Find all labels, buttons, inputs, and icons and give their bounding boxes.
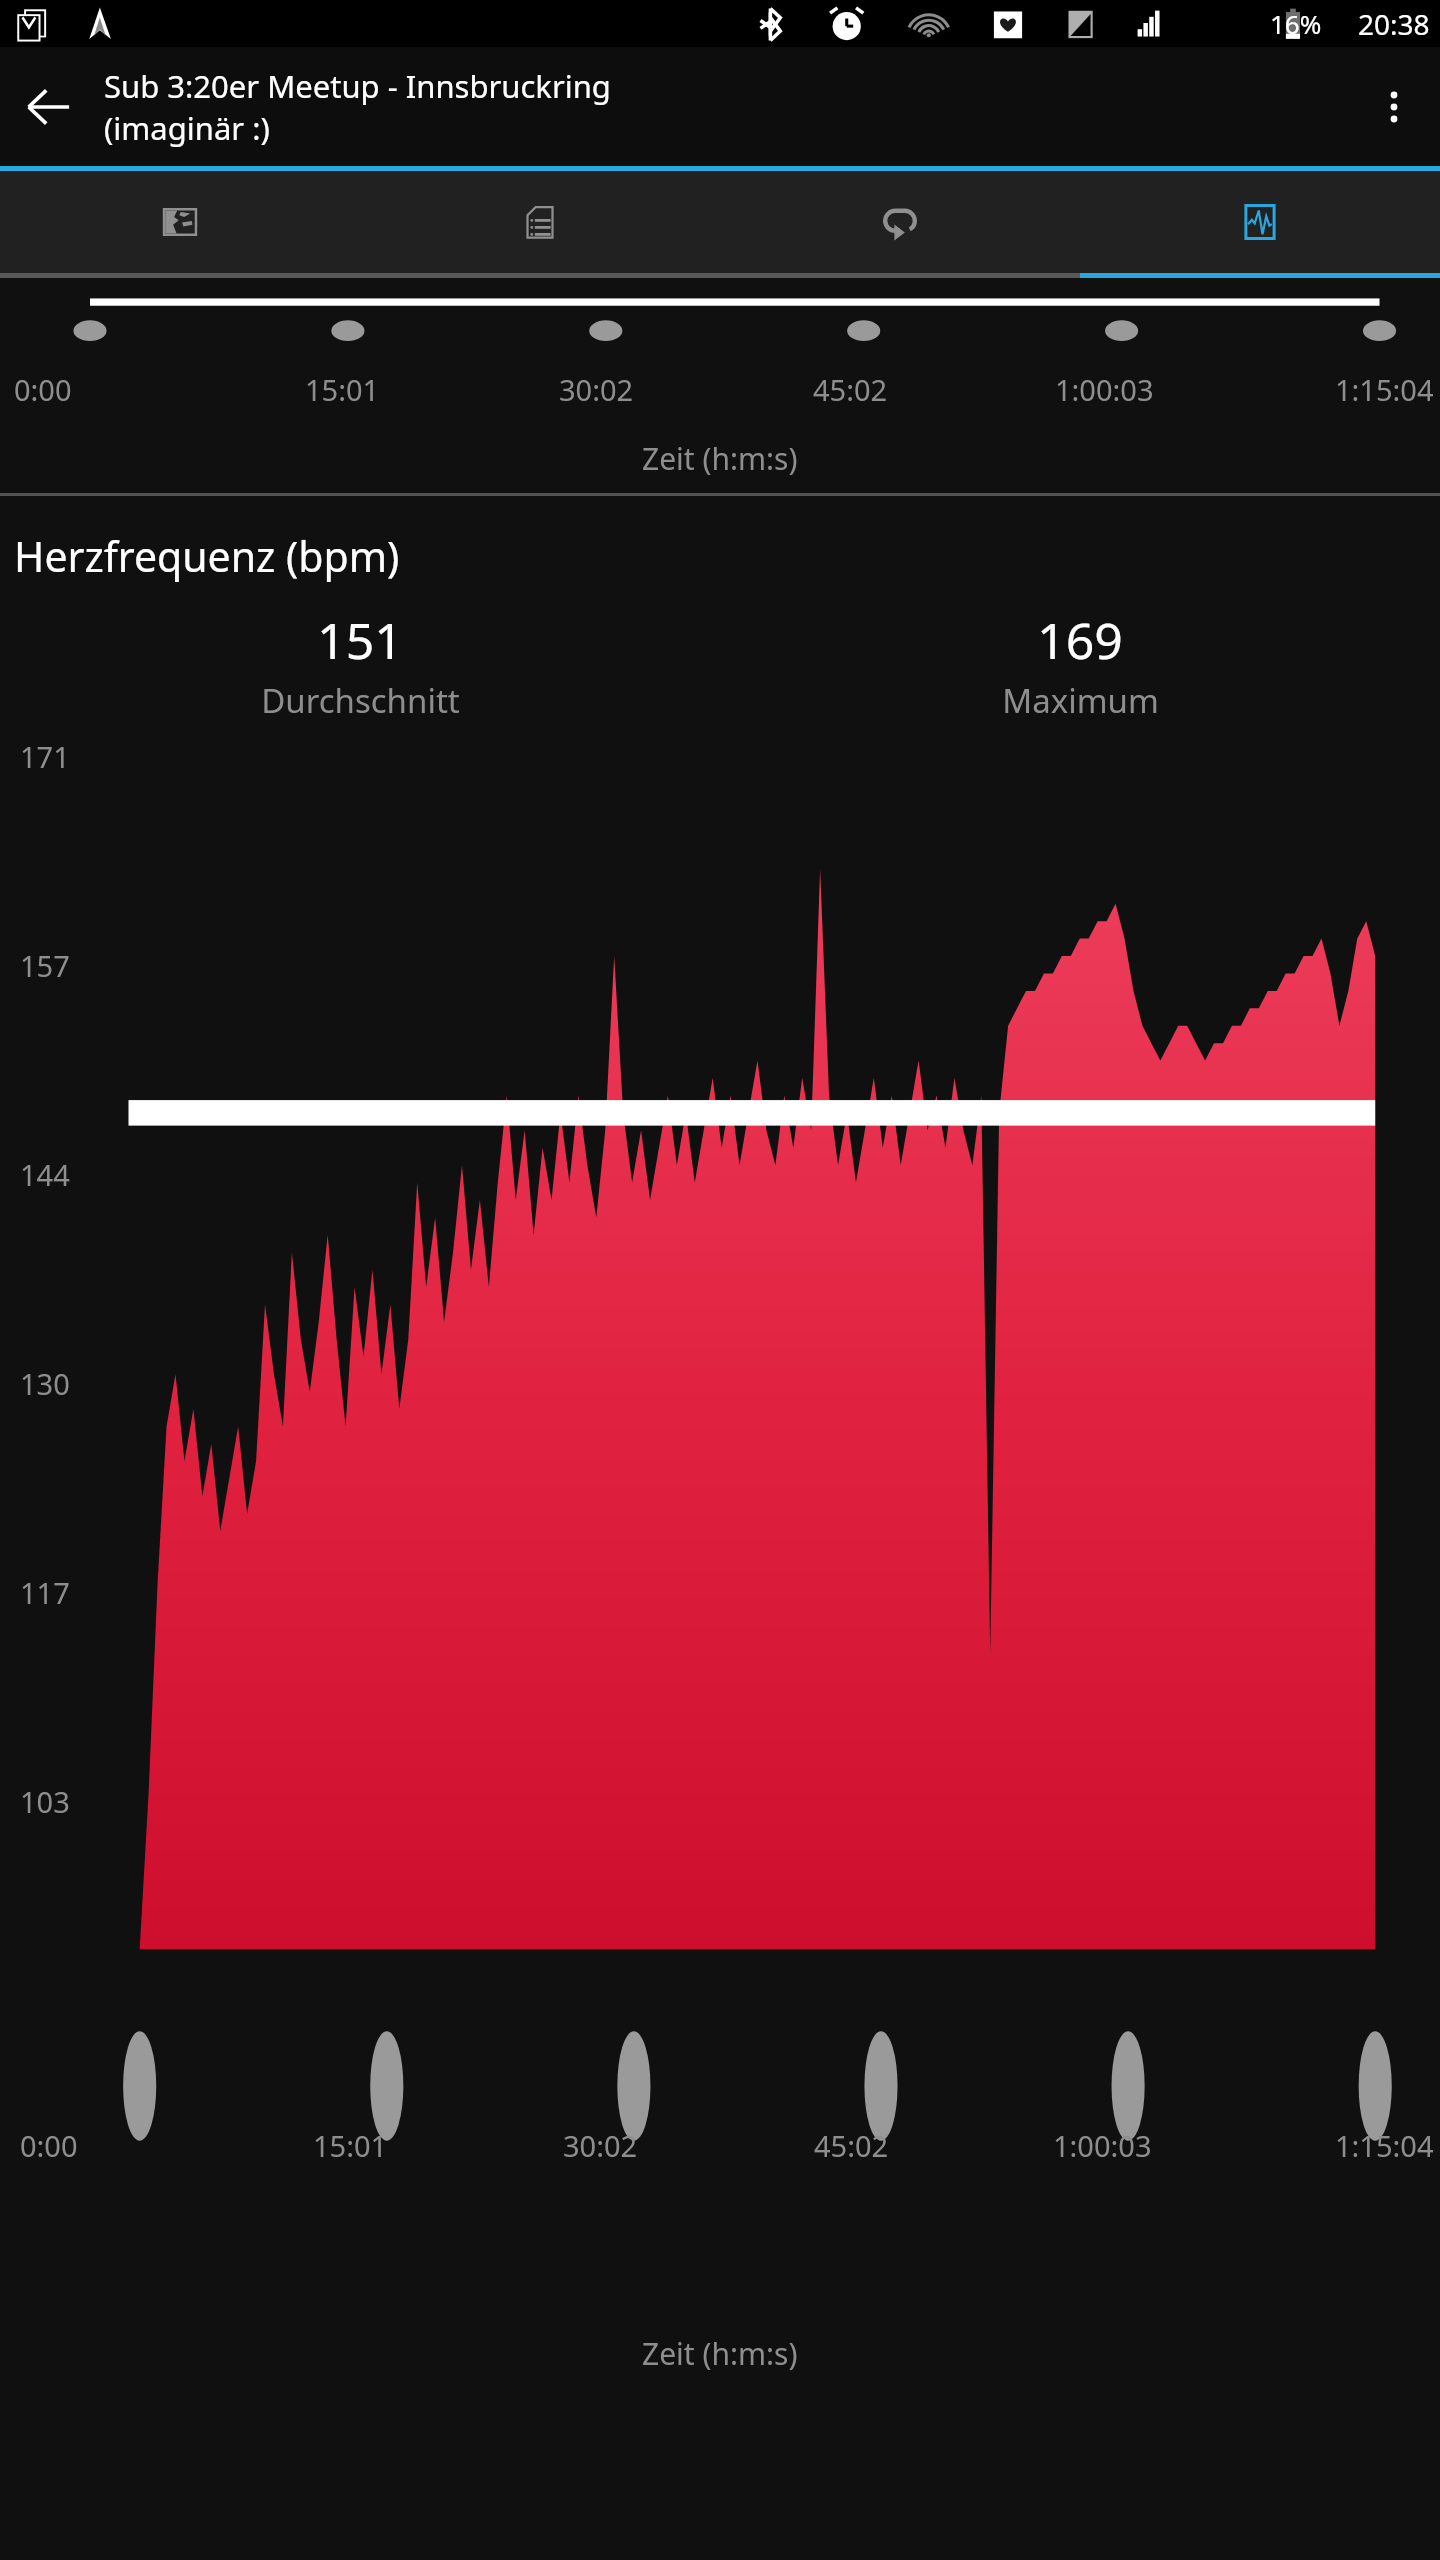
staticText: 169 bbox=[1037, 606, 1123, 674]
staticText: 0:00 bbox=[20, 2126, 78, 2165]
staticText: Sub 3:20er Meetup - Innsbruckring bbox=[104, 65, 611, 107]
staticText: Zeit (h:m:s) bbox=[642, 2333, 798, 2374]
staticText: Herzfrequenz (bpm) bbox=[14, 528, 400, 584]
staticText: 144 bbox=[20, 1155, 70, 1194]
staticText: 0:00 bbox=[14, 370, 72, 409]
staticText: 1:00:03 bbox=[1055, 370, 1154, 409]
staticText: 45:02 bbox=[814, 2126, 889, 2165]
staticText: 30:02 bbox=[563, 2126, 638, 2165]
staticText: 130 bbox=[20, 1364, 70, 1403]
staticText: 15:01 bbox=[305, 370, 380, 409]
button[interactable]: Laps tab bbox=[720, 171, 1080, 273]
staticText: 157 bbox=[20, 946, 70, 985]
staticText: Maximum bbox=[1002, 678, 1159, 723]
staticText: 117 bbox=[20, 1573, 70, 1612]
staticText: 30:02 bbox=[559, 370, 634, 409]
staticText: 15:01 bbox=[313, 2126, 388, 2165]
button[interactable]: Map tab bbox=[0, 171, 360, 273]
button[interactable]: Details tab bbox=[360, 171, 720, 273]
staticText: Zeit (h:m:s) bbox=[642, 438, 798, 479]
staticText: 103 bbox=[20, 1782, 70, 1821]
staticText: 1:00:03 bbox=[1053, 2126, 1152, 2165]
staticText: 20:38 bbox=[1358, 5, 1430, 43]
button[interactable]: Back bbox=[0, 59, 96, 155]
staticText: 16% bbox=[1270, 6, 1322, 41]
staticText: 171 bbox=[20, 737, 70, 776]
button[interactable]: Heart rate chart tab bbox=[1080, 171, 1440, 273]
staticText: 1:15:04 bbox=[1335, 370, 1434, 409]
staticText: (imaginär :) bbox=[104, 107, 270, 149]
button[interactable]: More options bbox=[1348, 61, 1440, 153]
staticText: 45:02 bbox=[813, 370, 888, 409]
staticText: 1:15:04 bbox=[1335, 2126, 1434, 2165]
staticText: 151 bbox=[317, 606, 403, 674]
staticText: Durchschnitt bbox=[261, 678, 460, 723]
